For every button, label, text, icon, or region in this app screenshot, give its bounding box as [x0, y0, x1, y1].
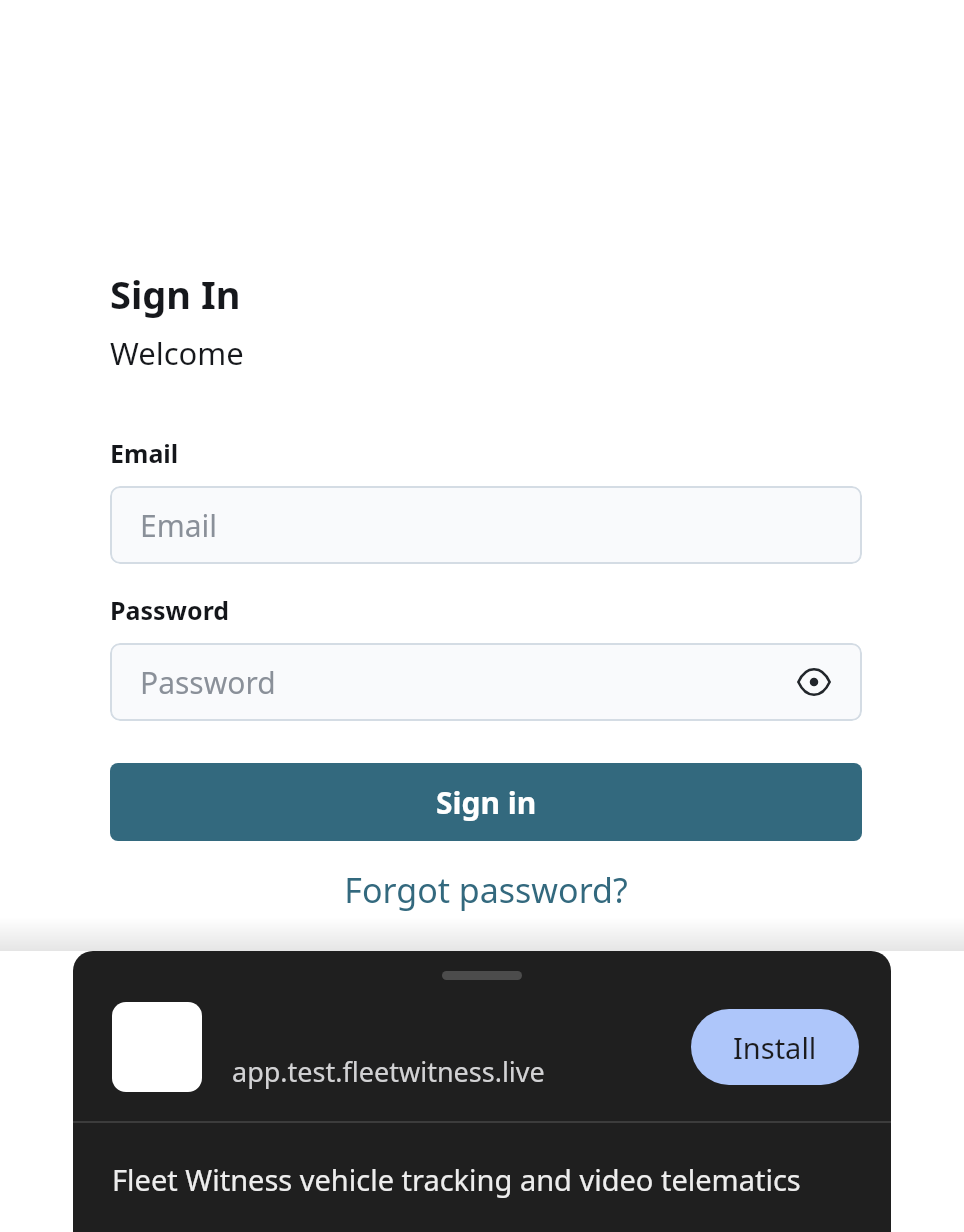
staticText: Sign In	[110, 268, 241, 320]
staticText: Fleet Witness vehicle tracking and video…	[112, 1160, 801, 1199]
button[interactable]: Install	[691, 1009, 859, 1085]
button[interactable]: Forgot password?	[110, 867, 862, 913]
staticText: Password	[110, 593, 230, 627]
staticText: app.test.fleetwitness.live	[232, 1053, 545, 1090]
staticText: Forgot password?	[344, 867, 628, 913]
staticText: Install	[733, 1028, 817, 1067]
staticText: Sign in	[436, 782, 537, 823]
staticText: Email	[140, 505, 218, 546]
button[interactable]: Sign in	[110, 763, 862, 841]
button[interactable]: Email	[110, 486, 862, 564]
staticText: Password	[140, 662, 276, 703]
staticText: Welcome	[110, 332, 244, 374]
button[interactable]: Password	[110, 643, 862, 721]
staticText: Email	[110, 436, 179, 470]
button[interactable]: Show password	[792, 660, 836, 704]
